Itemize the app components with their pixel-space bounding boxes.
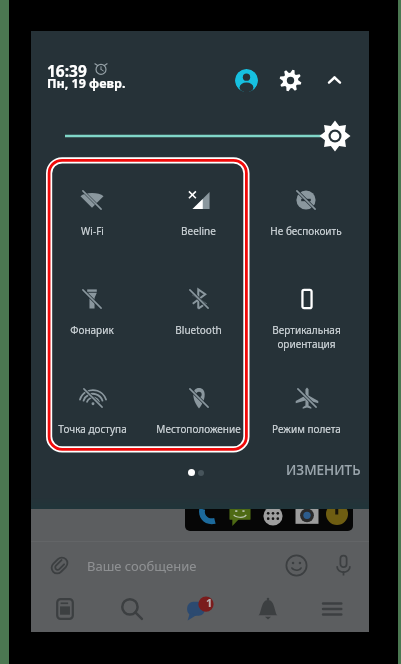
button[interactable]: Вертикальная ориентация bbox=[253, 287, 359, 357]
button[interactable]: Emoji bbox=[285, 554, 308, 577]
button[interactable]: Не беспокоить bbox=[253, 188, 359, 258]
button[interactable]: Beeline bbox=[145, 188, 251, 258]
button[interactable]: Search bbox=[109, 586, 155, 632]
button[interactable]: Collapse bbox=[323, 69, 346, 92]
staticText: Wi-Fi bbox=[81, 224, 104, 238]
button[interactable]: User account bbox=[235, 69, 258, 92]
button[interactable]: Brightness bbox=[31, 119, 369, 155]
staticText: Фонарик bbox=[70, 323, 114, 337]
staticText: Пн, 19 февр. bbox=[47, 75, 126, 92]
staticText: Beeline bbox=[181, 224, 216, 238]
staticText: Местоположение bbox=[156, 422, 241, 436]
button[interactable]: Notifications bbox=[245, 586, 291, 632]
staticText: 16:39 bbox=[47, 60, 87, 81]
button[interactable]: Messages bbox=[175, 586, 221, 632]
staticText: 1 bbox=[206, 595, 213, 610]
staticText: Не беспокоить bbox=[270, 224, 342, 238]
staticText: Вертикальная ориентация bbox=[272, 323, 341, 351]
staticText: Ваше сообщение bbox=[87, 557, 197, 575]
button[interactable]: Точка доступа bbox=[39, 386, 145, 456]
staticText: ИЗМЕНИТЬ bbox=[286, 461, 361, 479]
button[interactable]: Фонарик bbox=[39, 287, 145, 357]
button[interactable]: Режим полета bbox=[253, 386, 359, 456]
button[interactable]: Attach file bbox=[47, 554, 71, 578]
staticText: Режим полета bbox=[272, 422, 341, 436]
button[interactable]: News bbox=[42, 586, 88, 632]
button[interactable]: Menu bbox=[311, 586, 357, 632]
button[interactable]: Voice message bbox=[331, 553, 356, 578]
button[interactable]: Wi-Fi bbox=[39, 188, 145, 258]
staticText: Точка доступа bbox=[58, 422, 127, 436]
button[interactable]: Местоположение bbox=[145, 386, 251, 456]
button[interactable]: Bluetooth bbox=[145, 287, 251, 357]
button[interactable]: ИЗМЕНИТЬ bbox=[286, 461, 361, 479]
button[interactable]: Settings bbox=[279, 69, 302, 92]
staticText: Bluetooth bbox=[175, 323, 222, 337]
